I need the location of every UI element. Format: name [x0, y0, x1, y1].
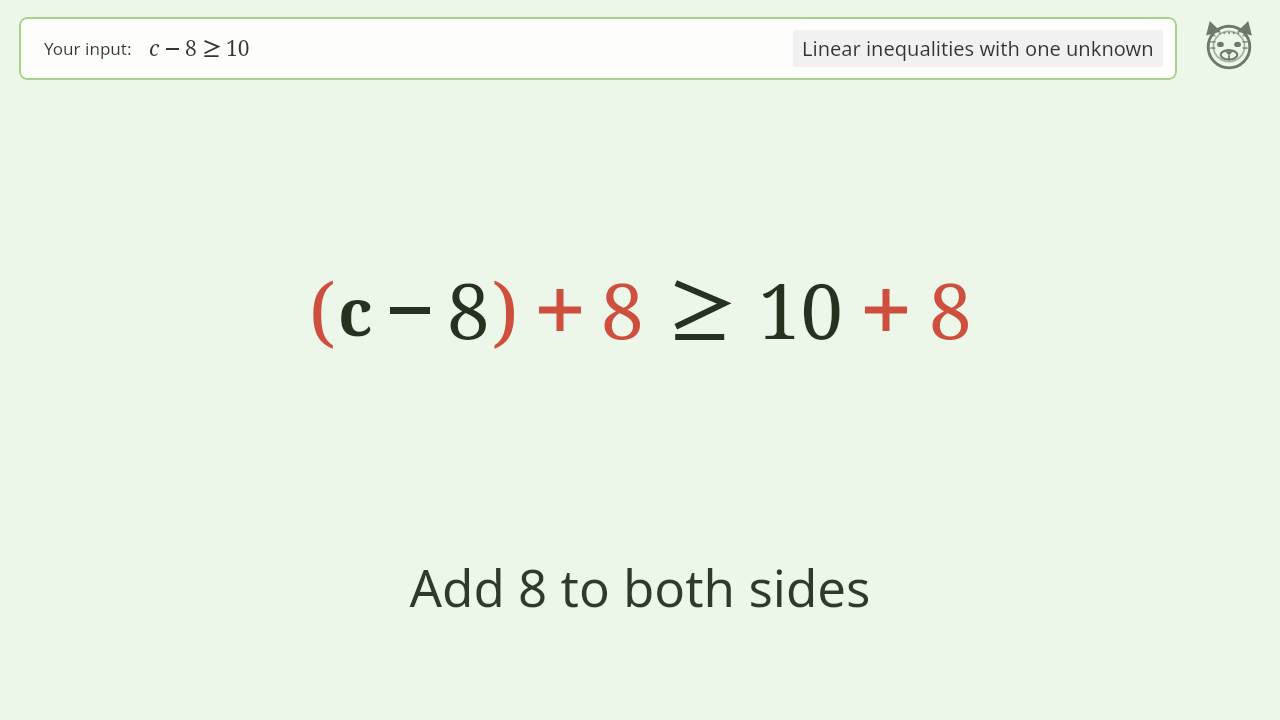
staticText: ) — [492, 258, 519, 362]
staticText: c — [149, 34, 160, 63]
staticText: 8 — [929, 258, 972, 362]
staticText: c — [338, 265, 373, 355]
staticText: 8 — [185, 34, 197, 63]
staticText: 8 — [601, 258, 644, 362]
button[interactable]: Your input: — [19, 17, 1177, 80]
staticText: 8 — [447, 258, 490, 362]
staticText: 10 — [226, 34, 250, 63]
button[interactable]: Linear inequalities with one unknown — [793, 30, 1163, 67]
staticText: Your input: — [44, 37, 132, 60]
staticText: Linear inequalities with one unknown — [802, 35, 1154, 62]
staticText: 10 — [758, 258, 843, 362]
button[interactable]: App logo — [1203, 20, 1255, 72]
staticText: ( — [309, 258, 336, 362]
staticText: Add 8 to both sides — [0, 552, 1280, 621]
